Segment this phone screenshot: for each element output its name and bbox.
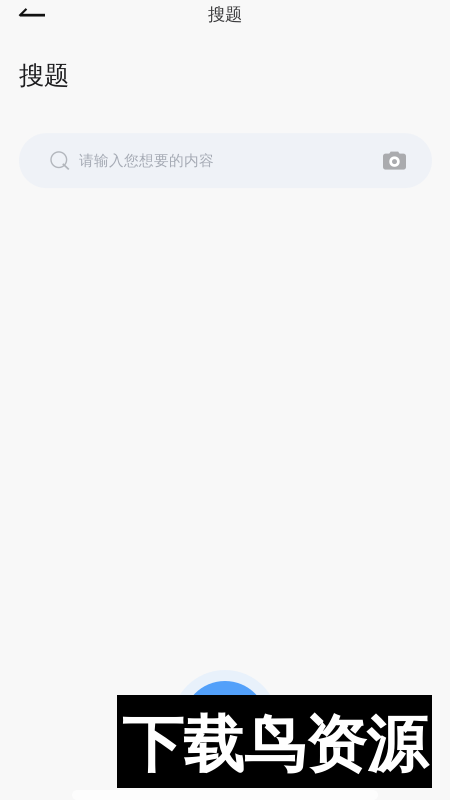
button[interactable]: 拍照搜题 xyxy=(171,670,278,777)
button[interactable]: 返回 xyxy=(0,1,66,31)
staticText: 下载鸟资源 xyxy=(122,707,427,783)
button[interactable]: 请输入您想要的内容 xyxy=(19,133,432,188)
staticText: 搜题 xyxy=(19,60,69,91)
staticText: 搜题 xyxy=(208,4,242,25)
staticText: 请输入您想要的内容 xyxy=(79,152,214,170)
